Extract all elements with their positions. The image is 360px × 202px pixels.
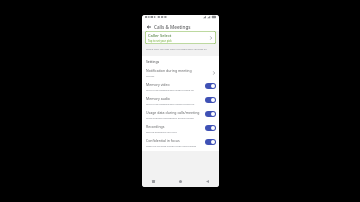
button[interactable]: Back	[145, 23, 152, 30]
button[interactable]: Confidential in focus	[142, 135, 219, 149]
button[interactable]: Back	[204, 178, 211, 185]
button[interactable]: Memory video	[142, 79, 219, 93]
staticText: Settings	[146, 59, 160, 64]
other: Open	[211, 70, 216, 75]
staticText: Memory video	[146, 82, 170, 87]
button[interactable]: Home	[177, 178, 184, 185]
button[interactable]: Recordings	[142, 121, 219, 135]
staticText: On/Off	[146, 74, 155, 77]
button[interactable]: Toggle on	[205, 125, 216, 131]
button[interactable]: Caller Select	[145, 31, 216, 44]
staticText: Confidential in focus	[146, 138, 180, 143]
staticText: Notification during meeting	[146, 68, 192, 73]
staticText: Check your call logs from a trusted entr…	[146, 47, 215, 50]
other: Open	[208, 35, 213, 40]
staticText: Tap to set your pick	[148, 39, 172, 43]
button[interactable]: Toggle on	[205, 111, 216, 117]
staticText: Caller Select	[148, 33, 172, 38]
staticText: Calls & Meetings	[154, 24, 191, 30]
staticText: Usage data during calls/meeting	[146, 110, 200, 115]
button[interactable]: Usage data during calls/meeting	[142, 107, 219, 121]
staticText: Start a call/meeting with video turned o…	[146, 88, 194, 91]
staticText: Memory audio	[146, 96, 170, 101]
button[interactable]: Memory audio	[142, 93, 219, 107]
button[interactable]: Toggle on	[205, 97, 216, 103]
staticText: Start a call/meeting with audio turned o…	[146, 102, 195, 105]
button[interactable]: Toggle on	[205, 139, 216, 145]
staticText: Show sharing notifications during screen…	[146, 116, 203, 119]
staticText: Recordings	[146, 124, 165, 129]
button[interactable]: Toggle on	[205, 83, 216, 89]
button[interactable]: Recents	[150, 178, 157, 185]
staticText: Keep the focused screen clean and moving	[146, 144, 197, 147]
button[interactable]: Notification during meeting	[142, 65, 219, 79]
staticText: Record meetings you host	[146, 130, 177, 133]
